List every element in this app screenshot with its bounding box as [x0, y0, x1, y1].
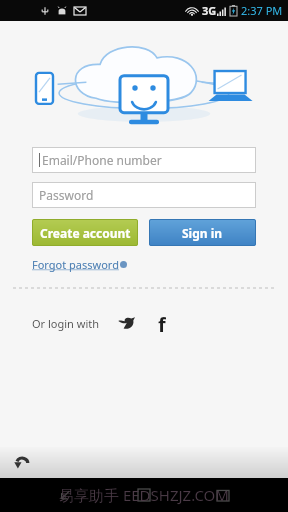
button[interactable]: Forgot password	[32, 257, 127, 272]
staticText: Or login with	[32, 316, 100, 331]
staticText: 3G	[202, 3, 217, 18]
button[interactable]: Sign in	[149, 219, 256, 246]
button[interactable]: Recent apps	[209, 481, 237, 509]
staticText: 易享助手 EEDSHZJZ.COM	[59, 485, 229, 505]
button[interactable]: Create account	[32, 219, 138, 246]
button[interactable]: Password	[32, 182, 256, 208]
button[interactable]: Email/Phone number	[32, 147, 256, 173]
button[interactable]: Login with Twitter	[114, 311, 138, 335]
staticText: f	[158, 311, 166, 335]
staticText: Password	[39, 187, 94, 203]
staticText: 2:37 PM	[241, 3, 283, 18]
button[interactable]: Login with Facebook	[150, 311, 174, 335]
staticText: Email/Phone number	[42, 152, 162, 168]
staticText: Sign in	[182, 225, 223, 241]
button[interactable]: Home	[130, 481, 158, 509]
button[interactable]: Back	[6, 448, 36, 478]
staticText: Create account	[40, 225, 131, 241]
button[interactable]: Back	[51, 481, 79, 509]
staticText: Forgot password	[32, 257, 119, 272]
